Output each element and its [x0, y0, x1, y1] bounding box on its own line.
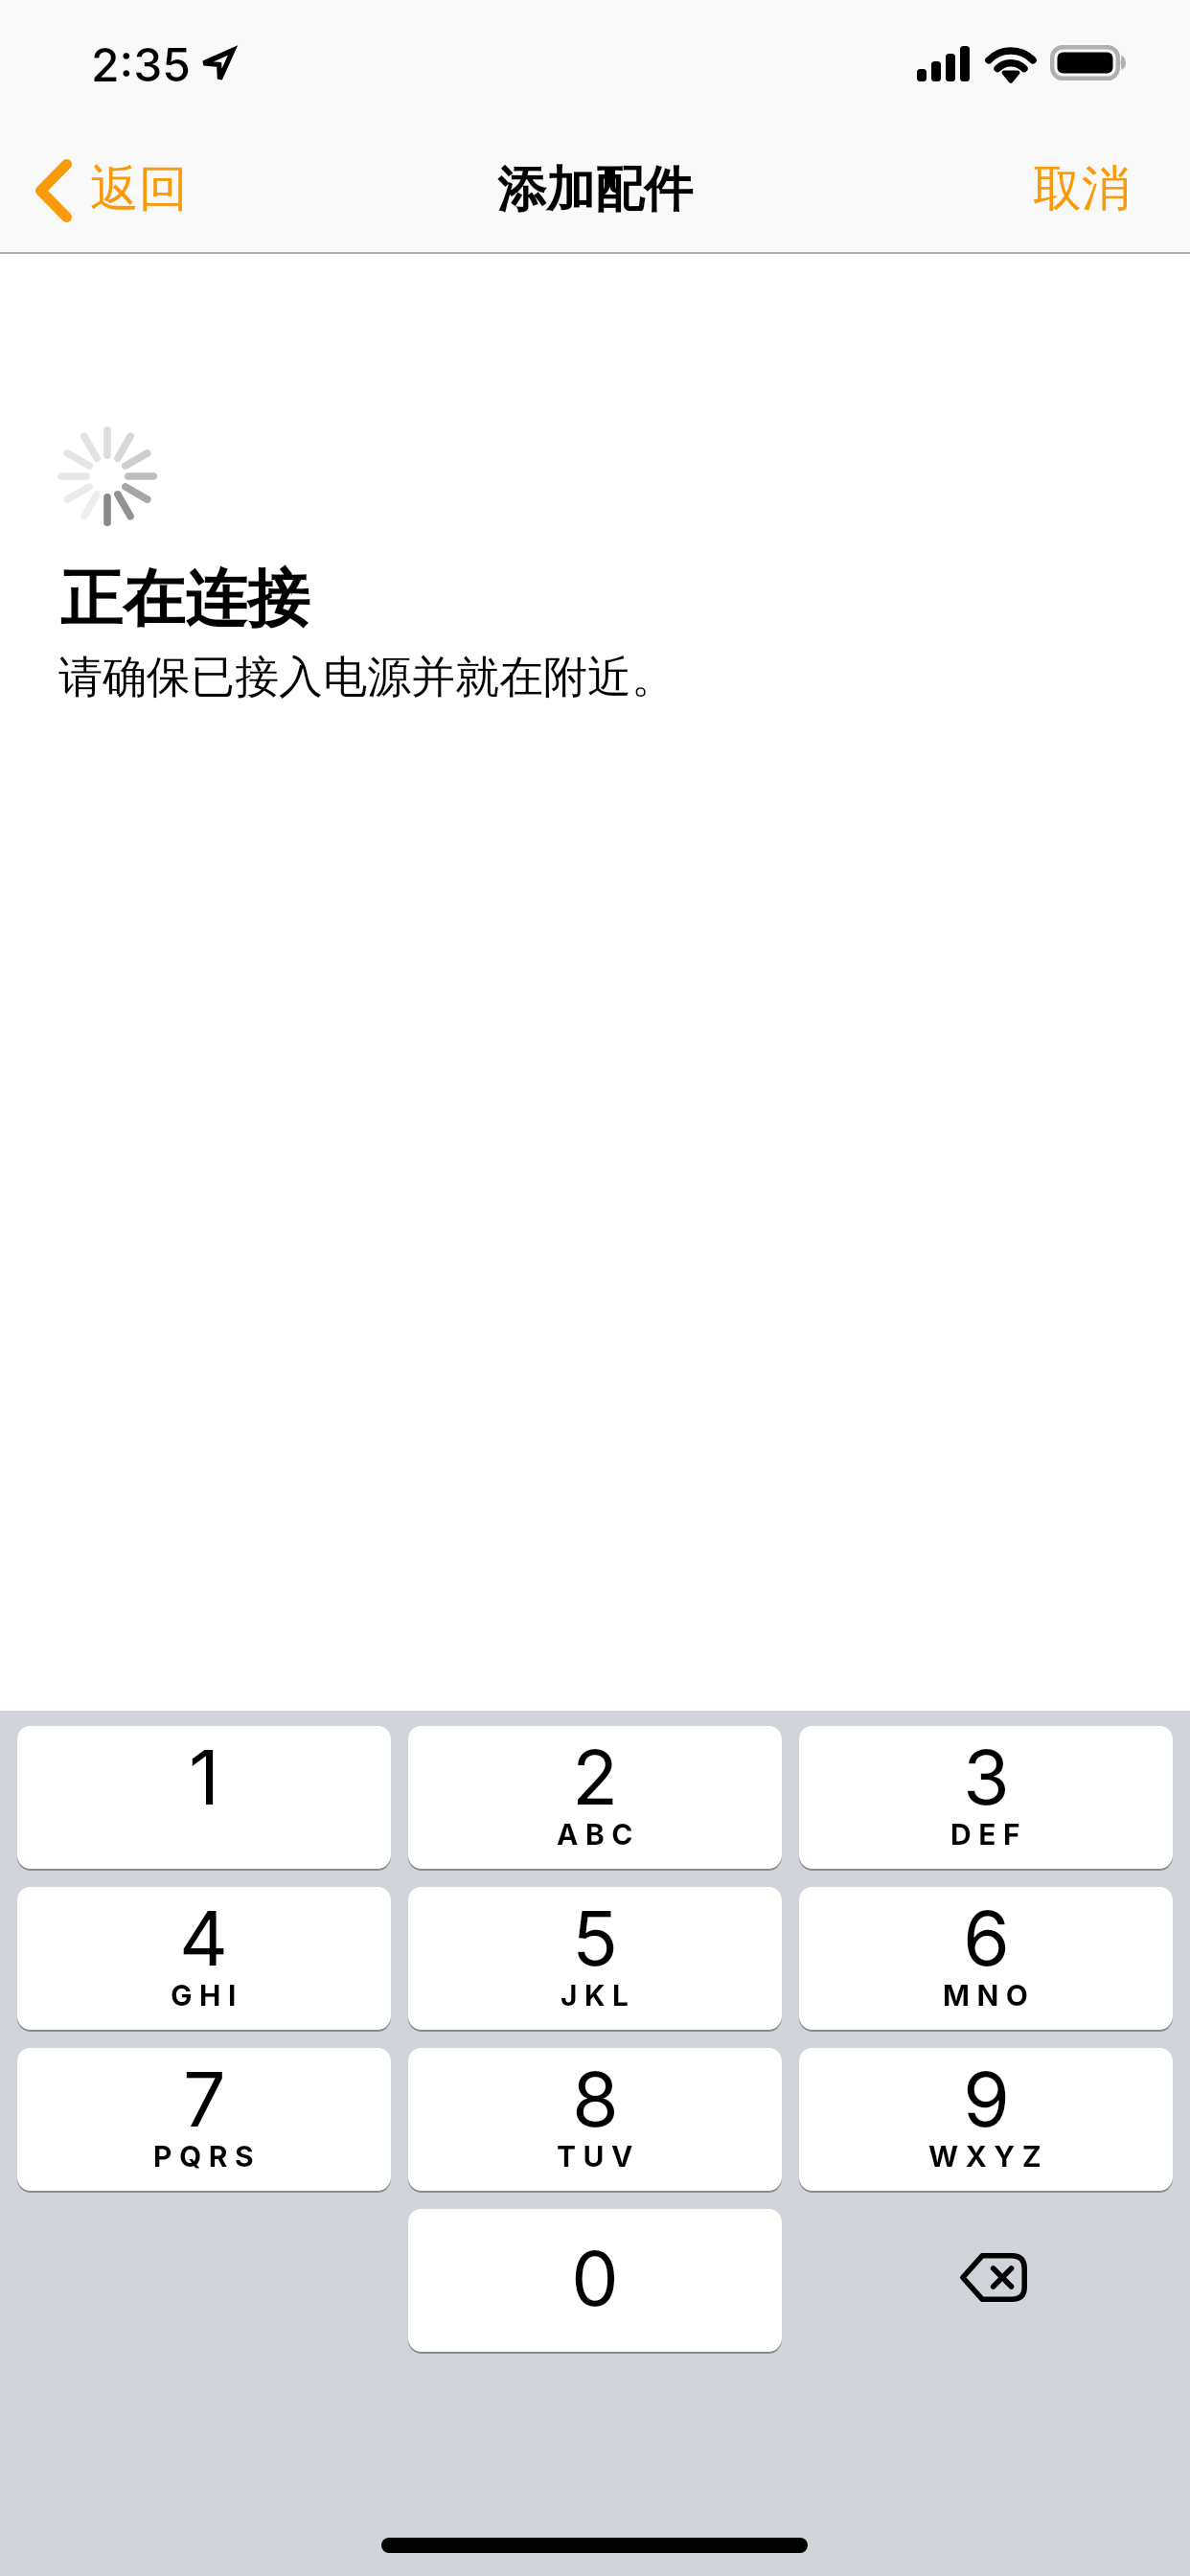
button[interactable]: 返回 [0, 142, 211, 236]
staticText: WXYZ [928, 2139, 1049, 2173]
button[interactable]: 5 [408, 1887, 782, 2030]
button[interactable]: 8 [408, 2048, 782, 2191]
staticText: DEF [950, 1817, 1027, 1851]
staticText: 添加配件 [497, 159, 693, 220]
staticText: 4 [179, 1892, 229, 1984]
button[interactable]: 2 [408, 1726, 782, 1869]
button[interactable]: 7 [17, 2048, 391, 2191]
staticText: 返回 [90, 158, 188, 219]
staticText: 6 [963, 1892, 1010, 1984]
staticText: PQRS [153, 2139, 262, 2173]
button[interactable]: 1 [17, 1726, 391, 1869]
staticText: 9 [963, 2053, 1010, 2145]
button[interactable]: 3 [799, 1726, 1173, 1869]
staticText: 取消 [1033, 158, 1131, 219]
staticText: 1 [189, 1731, 220, 1823]
staticText: GHI [171, 1978, 243, 2012]
staticText: 7 [183, 2053, 226, 2145]
staticText: TUV [557, 2139, 640, 2173]
staticText: 0 [571, 2232, 619, 2324]
staticText: 2 [572, 1731, 619, 1823]
button[interactable]: 4 [17, 1887, 391, 2030]
staticText: ABC [557, 1817, 640, 1851]
button[interactable]: 取消 [1004, 143, 1190, 235]
button[interactable]: 0 [408, 2209, 782, 2352]
staticText: 8 [572, 2053, 619, 2145]
button[interactable]: 6 [799, 1887, 1173, 2030]
staticText: MNO [943, 1978, 1036, 2012]
staticText: 正在连接 [60, 560, 309, 638]
button[interactable]: 9 [799, 2048, 1173, 2191]
staticText: JKL [561, 1978, 636, 2012]
staticText: 请确保已接入电源并就在附近。 [58, 650, 675, 705]
button[interactable]: Delete [799, 2209, 1173, 2352]
staticText: 5 [572, 1892, 619, 1984]
staticText: 3 [963, 1731, 1010, 1823]
staticText: 2:35 [91, 36, 191, 92]
